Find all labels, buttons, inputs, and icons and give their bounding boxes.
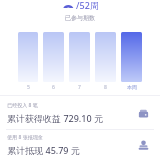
staticText: 累计获得收益 729.10 元	[7, 112, 103, 124]
other: 累计抵现	[134, 136, 152, 154]
staticText: /52周	[76, 0, 99, 11]
staticText: 使用 8 张抵现金	[7, 134, 43, 141]
button[interactable]	[69, 32, 90, 82]
button[interactable]	[43, 32, 64, 82]
button[interactable]: 使用 8 张抵现金	[0, 130, 160, 160]
staticText: 8	[104, 84, 107, 91]
button[interactable]	[18, 32, 38, 82]
staticText: 7	[78, 84, 81, 91]
other: 累计获得收益	[134, 104, 152, 122]
staticText: 5	[27, 84, 30, 91]
staticText: 已参与期数	[65, 14, 95, 22]
staticText: 累计抵现 45.79 元	[7, 144, 80, 156]
staticText: 6	[52, 84, 55, 91]
button[interactable]: 已经投入 8 笔	[0, 97, 160, 129]
staticText: 本周	[127, 84, 137, 90]
staticText: 已经投入 8 笔	[7, 102, 38, 109]
button[interactable]	[95, 32, 116, 82]
staticText: 9	[62, 0, 75, 8]
button[interactable]	[121, 32, 142, 82]
